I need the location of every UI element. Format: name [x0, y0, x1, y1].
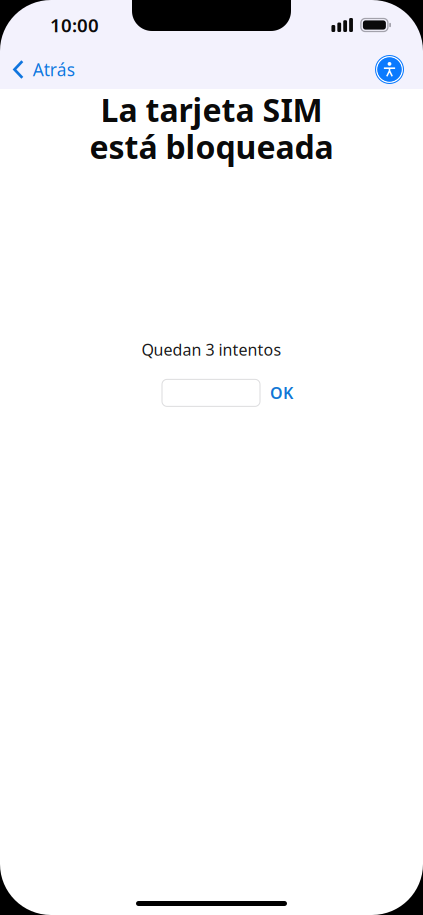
- staticText: Quedan 3 intentos: [141, 339, 281, 360]
- button[interactable]: Accesibilidad: [375, 50, 423, 89]
- staticText: 10:00: [50, 13, 99, 37]
- staticText: OK: [270, 382, 293, 403]
- staticText: está bloqueada: [89, 125, 333, 168]
- button[interactable]: Atrás: [0, 52, 75, 87]
- staticText: La tarjeta SIM: [100, 88, 322, 131]
- staticText: Atrás: [33, 58, 75, 81]
- button[interactable]: OK: [260, 377, 301, 408]
